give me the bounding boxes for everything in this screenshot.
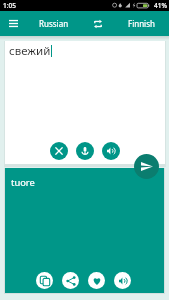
button[interactable]: Speak translation xyxy=(114,272,131,289)
button[interactable]: Share xyxy=(62,272,79,289)
button[interactable]: Speak source text xyxy=(102,142,120,160)
staticText: свежий xyxy=(9,43,51,59)
staticText: 41% xyxy=(154,1,167,10)
button[interactable]: Translate xyxy=(134,154,159,179)
button[interactable]: Russian xyxy=(26,11,81,36)
button[interactable]: Finnish xyxy=(114,11,169,36)
staticText: Finnish xyxy=(128,18,155,29)
button[interactable]: Copy translation xyxy=(36,272,53,289)
staticText: tuore xyxy=(11,176,35,189)
staticText: Russian xyxy=(39,18,69,29)
button[interactable]: Add to favourites xyxy=(88,272,105,289)
button[interactable]: Clear text xyxy=(50,142,68,160)
button[interactable]: Swap languages xyxy=(86,11,110,36)
button[interactable]: Voice input xyxy=(76,142,94,160)
staticText: 1:05 xyxy=(3,1,16,10)
button[interactable]: Menu xyxy=(0,11,26,36)
